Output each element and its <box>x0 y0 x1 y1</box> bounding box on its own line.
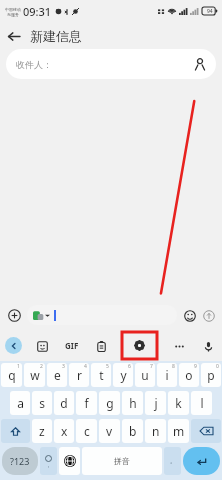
button[interactable]: s <box>32 391 52 415</box>
button[interactable]: c <box>76 419 97 443</box>
button[interactable]: m <box>168 419 189 443</box>
button[interactable]: q <box>1 363 22 387</box>
button[interactable]: Emoji keyboard <box>40 447 57 475</box>
button[interactable]: ?123 <box>2 447 38 475</box>
button[interactable]: t <box>91 363 111 387</box>
staticText: i <box>165 367 169 383</box>
button[interactable]: o <box>179 363 199 387</box>
staticText: y <box>120 367 127 383</box>
button[interactable]: g <box>99 391 120 415</box>
button[interactable]: k <box>168 391 189 415</box>
staticText: 。 <box>170 457 176 465</box>
staticText: m <box>173 423 185 439</box>
staticText: d <box>60 395 68 411</box>
button[interactable]: Choose contact <box>190 54 210 74</box>
button[interactable]: Clipboard <box>92 337 110 355</box>
staticText: 09:31 <box>23 4 52 19</box>
button[interactable]: f <box>76 391 97 415</box>
staticText: 中国移动 <box>5 7 21 12</box>
button[interactable]: Change language <box>59 447 80 475</box>
staticText: v <box>106 423 113 439</box>
staticText: ?123 <box>10 455 30 467</box>
staticText: 8 <box>172 363 175 370</box>
staticText: w <box>30 367 40 383</box>
button[interactable]: Voice input <box>199 337 217 355</box>
staticText: k <box>175 395 182 411</box>
button[interactable]: Add <box>5 306 23 324</box>
button[interactable]: z <box>32 419 52 443</box>
staticText: q <box>8 367 16 383</box>
button[interactable]: w <box>24 363 45 387</box>
button[interactable]: a <box>10 391 30 415</box>
staticText: e <box>54 367 61 383</box>
staticText: GIF <box>65 340 79 351</box>
staticText: z <box>39 423 45 439</box>
button[interactable]: Enter <box>183 447 220 475</box>
button[interactable]: h <box>122 391 143 415</box>
staticText: j <box>154 395 158 411</box>
staticText: c <box>84 423 90 439</box>
button[interactable]: y <box>113 363 133 387</box>
staticText: l <box>200 395 204 411</box>
button[interactable]: Collapse toolbar <box>5 337 22 354</box>
staticText: s <box>39 395 45 411</box>
staticText: p <box>207 367 215 383</box>
button[interactable]: Period <box>164 447 181 475</box>
button[interactable]: More options <box>170 337 188 355</box>
button[interactable]: 收件人： <box>6 49 216 79</box>
button[interactable]: j <box>145 391 166 415</box>
staticText: x <box>61 423 68 439</box>
button[interactable]: Shift <box>1 419 30 443</box>
staticText: g <box>106 395 114 411</box>
staticText: 无服务 <box>7 12 19 17</box>
button[interactable]: x <box>54 419 74 443</box>
staticText: 94 <box>207 8 213 15</box>
staticText: t <box>99 367 104 383</box>
button[interactable] <box>27 305 177 325</box>
button[interactable]: n <box>145 419 166 443</box>
staticText: u <box>141 367 149 383</box>
button[interactable]: Back <box>0 23 26 49</box>
staticText: 2 <box>40 363 43 370</box>
staticText: 1 <box>17 363 20 370</box>
staticText: b <box>129 423 137 439</box>
button[interactable]: 拼音 <box>82 447 162 475</box>
staticText: 5 <box>106 363 109 370</box>
button[interactable]: l <box>191 391 212 415</box>
button[interactable]: b <box>122 419 143 443</box>
button[interactable]: Settings <box>132 338 147 353</box>
staticText: f <box>84 395 89 411</box>
staticText: 拼音 <box>114 456 130 466</box>
staticText: 新建信息 <box>30 28 82 44</box>
button[interactable]: Emoji <box>181 307 198 324</box>
staticText: h <box>129 395 137 411</box>
staticText: ， <box>46 462 51 468</box>
staticText: 0 <box>216 363 219 370</box>
button[interactable]: d <box>54 391 74 415</box>
staticText: 收件人： <box>16 59 52 70</box>
staticText: 7 <box>150 363 153 370</box>
staticText: 4 <box>84 363 87 370</box>
staticText: 3 <box>62 363 65 370</box>
button[interactable]: v <box>99 419 120 443</box>
button[interactable]: GIF <box>63 340 81 351</box>
button[interactable]: p <box>201 363 221 387</box>
staticText: o <box>185 367 193 383</box>
button[interactable]: Backspace <box>191 419 221 443</box>
button[interactable]: i <box>157 363 177 387</box>
staticText: r <box>77 367 82 383</box>
staticText: a <box>17 395 24 411</box>
staticText: 6 <box>128 363 131 370</box>
button[interactable]: r <box>69 363 89 387</box>
button[interactable]: Stickers <box>33 337 51 355</box>
button[interactable]: Send <box>200 307 217 324</box>
button[interactable]: e <box>47 363 67 387</box>
staticText: 9 <box>194 363 197 370</box>
staticText: n <box>152 423 160 439</box>
button[interactable]: u <box>135 363 155 387</box>
